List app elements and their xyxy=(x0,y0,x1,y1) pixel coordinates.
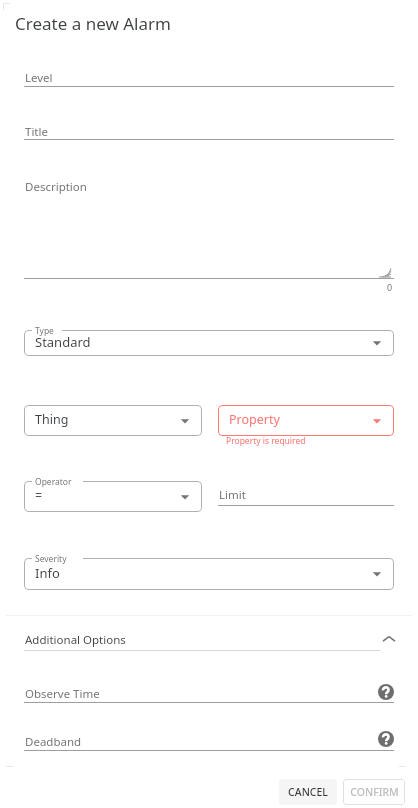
staticText: Property is required xyxy=(226,435,306,447)
staticText: Property xyxy=(229,411,280,428)
button[interactable] xyxy=(24,628,394,652)
button[interactable] xyxy=(24,330,394,356)
button[interactable] xyxy=(24,175,394,279)
staticText: Info xyxy=(35,564,60,582)
button[interactable] xyxy=(24,686,394,708)
button[interactable]: Help xyxy=(378,684,394,700)
staticText: CANCEL xyxy=(288,785,328,799)
staticText: Description xyxy=(25,179,87,195)
button[interactable] xyxy=(24,558,394,590)
staticText: Severity xyxy=(35,553,67,565)
button[interactable] xyxy=(24,405,202,436)
button[interactable]: Help xyxy=(378,731,394,747)
staticText: Title xyxy=(25,124,48,140)
staticText: Deadband xyxy=(25,734,82,750)
staticText: Level xyxy=(25,70,53,86)
button[interactable] xyxy=(24,734,394,756)
button[interactable] xyxy=(24,124,394,145)
button[interactable] xyxy=(24,70,394,92)
staticText: Additional Options xyxy=(25,632,126,648)
button[interactable] xyxy=(218,405,394,436)
staticText: Limit xyxy=(219,487,246,503)
staticText: = xyxy=(35,487,43,504)
staticText: 0 xyxy=(387,281,393,293)
staticText: Standard xyxy=(35,333,91,351)
staticText: Operator xyxy=(35,476,72,488)
button[interactable] xyxy=(218,487,394,511)
other: Collapse additional options xyxy=(382,634,396,644)
button[interactable]: CONFIRM xyxy=(343,779,405,805)
staticText: CONFIRM xyxy=(350,785,399,799)
staticText: Thing xyxy=(35,411,69,428)
staticText: Type xyxy=(35,325,54,337)
staticText: Observe Time xyxy=(25,686,100,702)
staticText: Create a new Alarm xyxy=(15,12,171,35)
button[interactable]: CANCEL xyxy=(279,779,337,805)
button[interactable] xyxy=(24,481,202,512)
